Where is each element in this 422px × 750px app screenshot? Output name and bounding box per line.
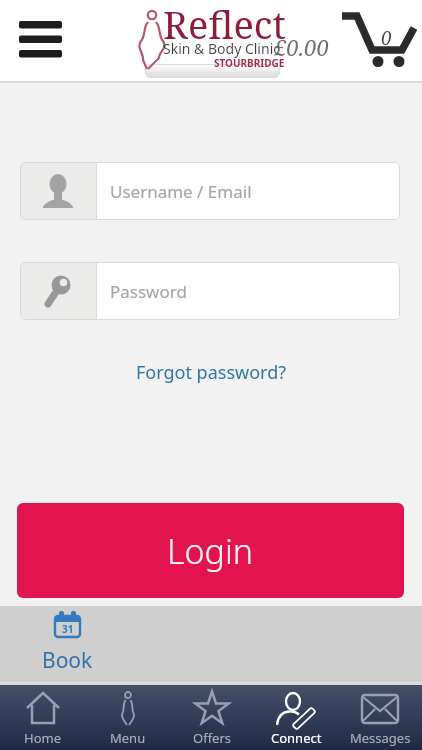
staticText: Login (167, 528, 254, 574)
button[interactable]: 0 (336, 8, 420, 66)
button[interactable]: Messages (338, 685, 422, 750)
button[interactable]: Home (0, 685, 85, 750)
staticText: Messages (350, 729, 411, 747)
button[interactable]: Username / Email (20, 162, 400, 220)
button[interactable]: Password (20, 262, 400, 320)
button[interactable]: Login (17, 503, 404, 598)
button[interactable]: Connect (254, 685, 338, 750)
staticText: Skin & Body Clinic (163, 39, 280, 58)
staticText: Reflect (163, 0, 286, 50)
button[interactable]: 31 (37, 611, 97, 675)
staticText: 31 (62, 622, 74, 636)
staticText: Forgot password? (136, 360, 287, 385)
button[interactable]: Forgot password? (136, 360, 287, 385)
staticText: STOURBRIDGE (214, 56, 285, 70)
staticText: Password (110, 280, 187, 303)
staticText: Home (24, 729, 61, 747)
staticText: Connect (271, 729, 322, 747)
button[interactable]: Menu (85, 685, 170, 750)
button[interactable]: Offers (170, 685, 254, 750)
staticText: £0.00 (274, 32, 329, 62)
staticText: Username / Email (110, 180, 252, 203)
button[interactable] (14, 16, 68, 62)
staticText: Offers (193, 729, 232, 747)
staticText: Menu (110, 729, 146, 747)
staticText: Book (42, 646, 93, 675)
staticText: 0 (381, 25, 392, 51)
